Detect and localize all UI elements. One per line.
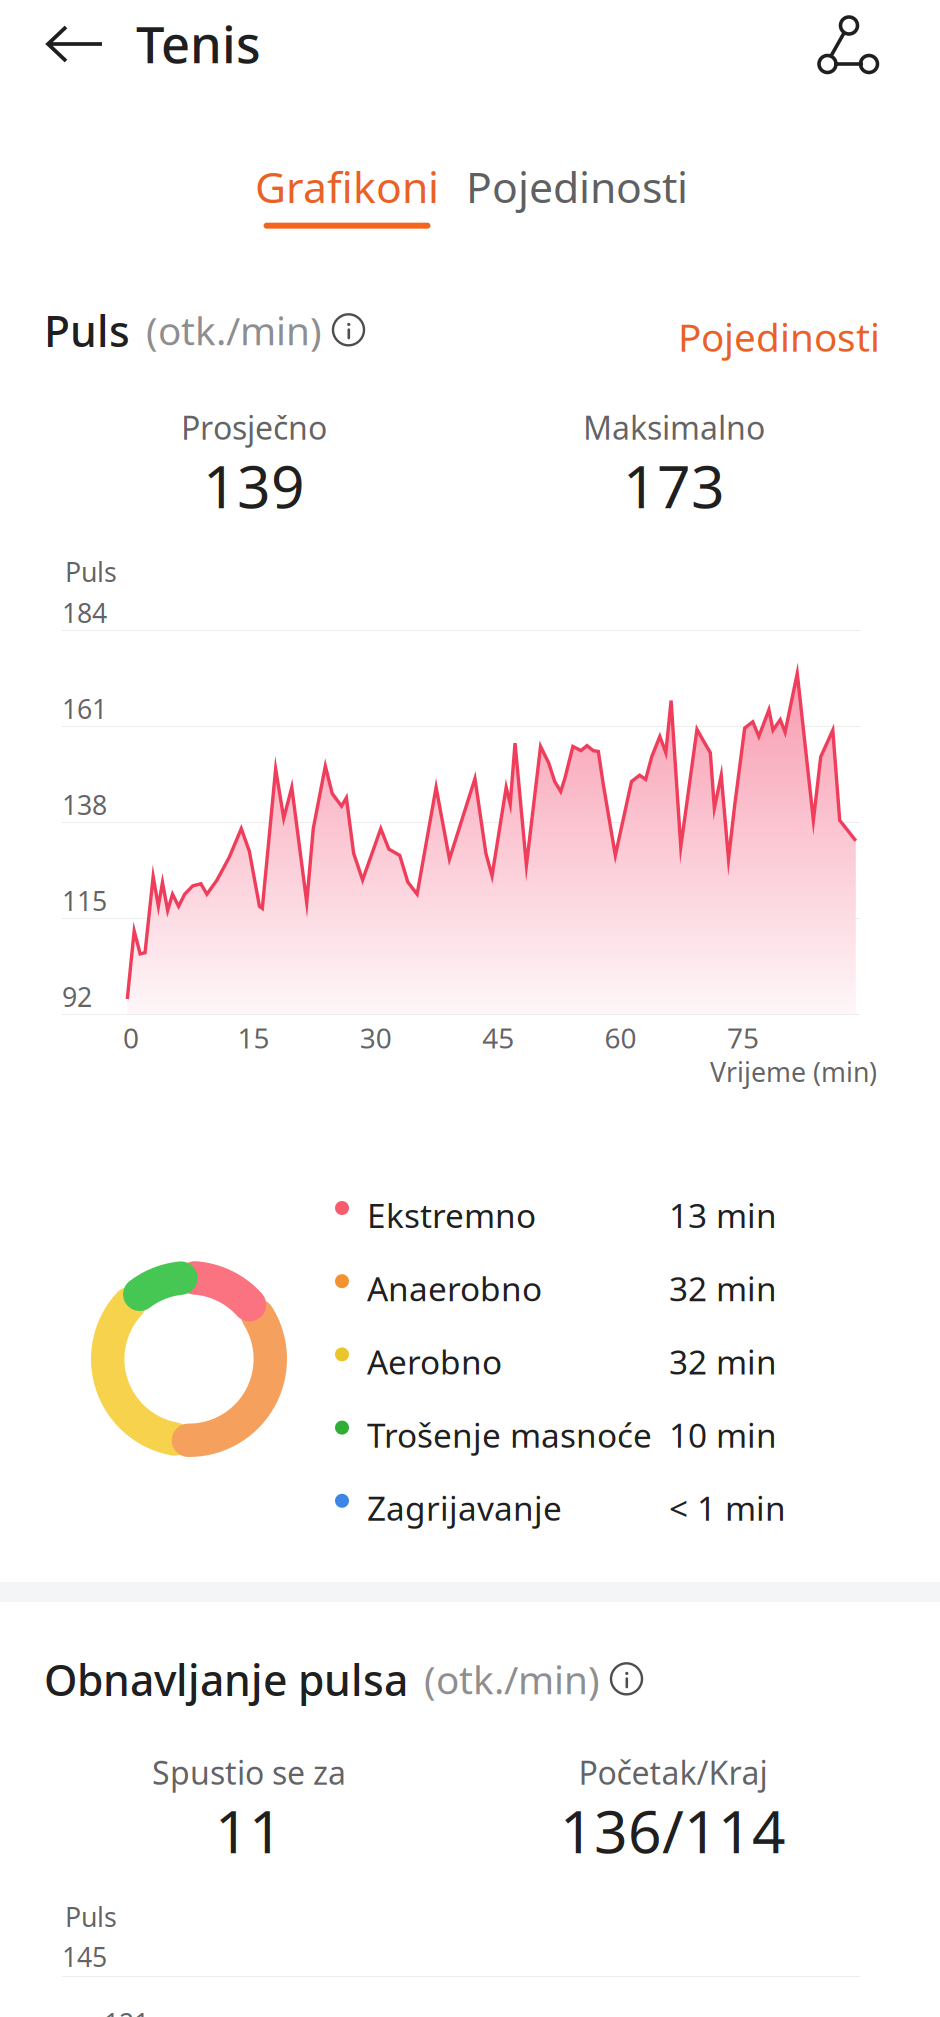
staticText: 13 min: [669, 1193, 777, 1237]
staticText: 161: [62, 691, 107, 726]
staticText: 75: [727, 1019, 759, 1056]
staticText: Trošenje masnoće: [367, 1413, 652, 1457]
staticText: Puls: [44, 302, 130, 359]
staticText: 45: [482, 1019, 514, 1056]
staticText: Maksimalno: [583, 406, 765, 448]
staticText: Grafikoni: [255, 158, 439, 215]
staticText: Tenis: [136, 10, 261, 77]
staticText: Anaerobno: [367, 1266, 542, 1310]
staticText: 121: [104, 2005, 149, 2017]
staticText: 11: [215, 1791, 283, 1869]
staticText: 139: [203, 446, 305, 524]
staticText: (otk./min): [424, 1654, 600, 1705]
staticText: Obnavljanje pulsa: [44, 1651, 408, 1708]
staticText: Pojedinosti: [466, 158, 688, 215]
staticText: Pojedinosti: [678, 311, 880, 362]
staticText: 184: [62, 595, 107, 630]
button[interactable]: Pojedinosti: [662, 301, 896, 372]
staticText: 145: [62, 1939, 107, 1974]
button[interactable]: Back: [28, 0, 124, 88]
staticText: Vrijeme (min): [710, 1054, 877, 1089]
staticText: 32 min: [669, 1266, 777, 1310]
staticText: 136/114: [560, 1791, 786, 1869]
staticText: 60: [605, 1019, 637, 1056]
staticText: Zagrijavanje: [367, 1486, 562, 1530]
staticText: 30: [360, 1019, 392, 1056]
staticText: 10 min: [669, 1413, 777, 1457]
button[interactable]: Grafikoni: [255, 158, 439, 229]
staticText: Puls: [65, 554, 117, 589]
staticText: Početak/Kraj: [578, 1751, 767, 1793]
button[interactable]: Pojedinosti: [466, 158, 688, 237]
staticText: 32 min: [669, 1339, 777, 1384]
staticText: 0: [123, 1019, 139, 1056]
staticText: 92: [62, 979, 92, 1014]
button[interactable]: Share: [796, 0, 908, 88]
staticText: (otk./min): [146, 305, 322, 356]
staticText: Prosječno: [181, 406, 327, 448]
staticText: Spustio se za: [152, 1751, 346, 1793]
staticText: 15: [237, 1019, 269, 1056]
staticText: Puls: [65, 1899, 117, 1934]
staticText: Aerobno: [367, 1339, 502, 1384]
staticText: 138: [62, 787, 107, 822]
staticText: 115: [62, 883, 107, 918]
staticText: Ekstremno: [367, 1193, 536, 1237]
staticText: < 1 min: [669, 1486, 786, 1530]
staticText: 173: [623, 446, 725, 524]
